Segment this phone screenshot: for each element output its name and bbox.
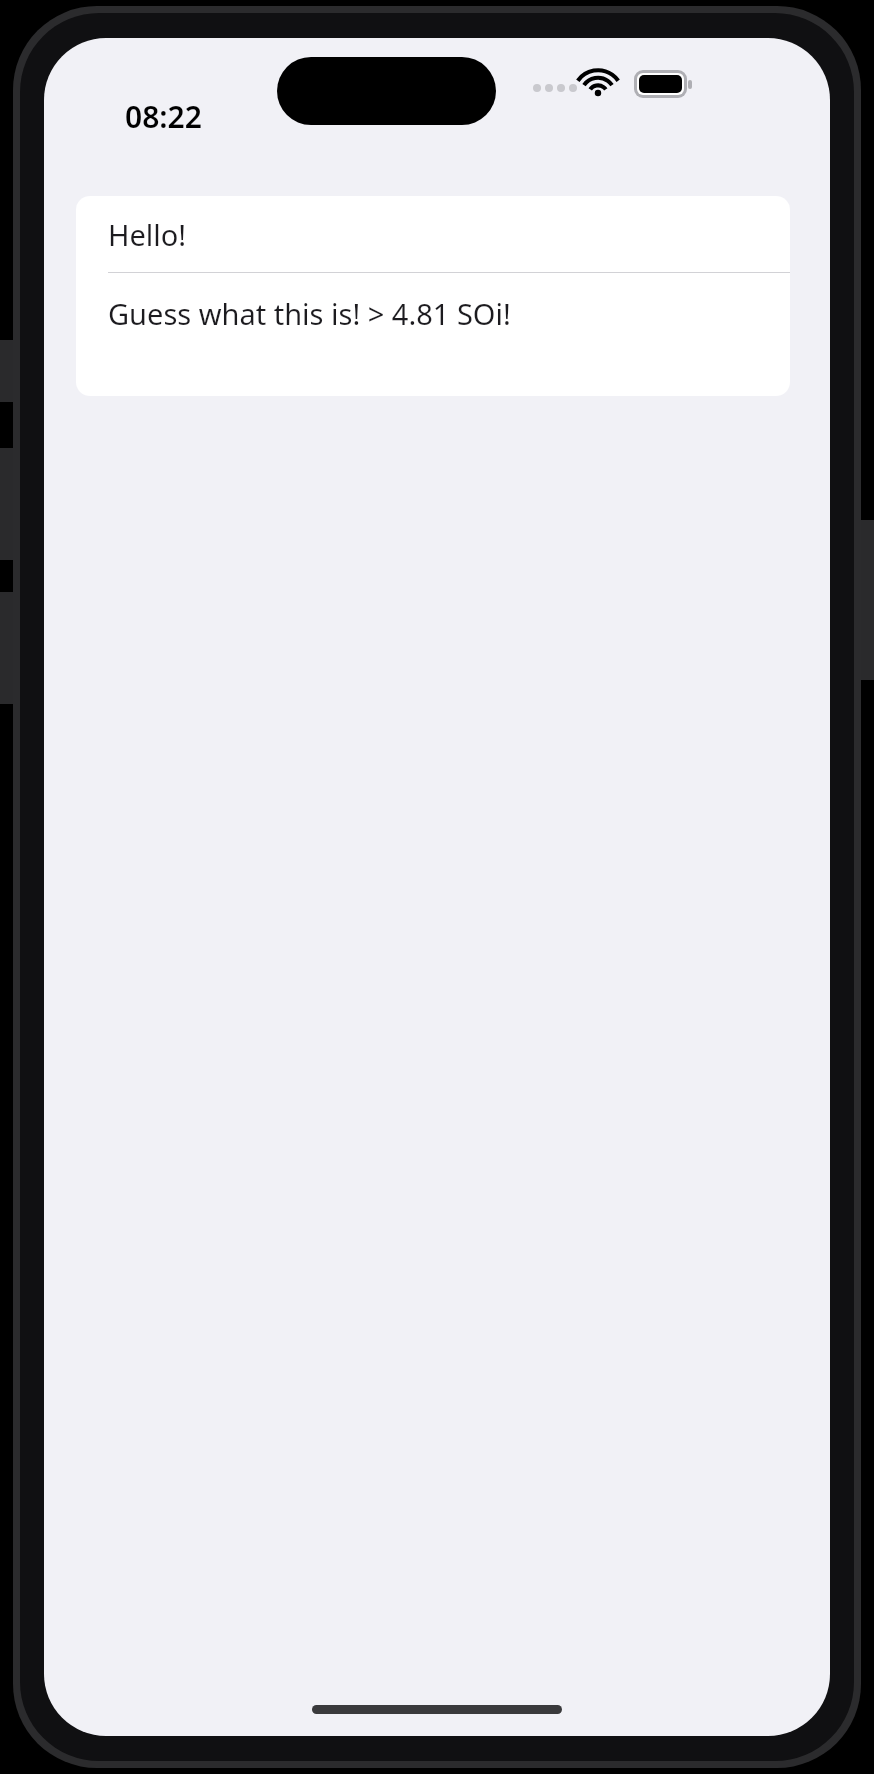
staticText: 08:22 [125,96,202,137]
staticText: Guess what this is! > 4.81 SOi! [108,294,511,333]
button[interactable]: Guess what this is! > 4.81 SOi! [76,273,790,396]
button[interactable]: Hello! [76,196,790,272]
staticText: Hello! [108,215,187,254]
other: Wi-Fi [580,68,616,96]
